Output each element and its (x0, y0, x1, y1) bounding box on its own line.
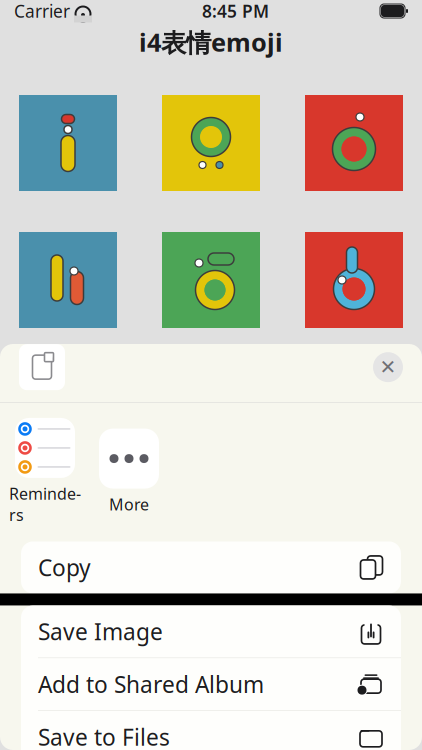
staticText: More (109, 494, 149, 515)
staticText: Add to Shared Album (38, 669, 264, 699)
staticText: 8:45 PM (202, 0, 269, 22)
button[interactable]: Emoji 4 (19, 232, 117, 328)
staticText: Save to Files (38, 722, 170, 750)
button[interactable]: More (92, 429, 166, 515)
button[interactable]: Emoji 6 (305, 232, 403, 328)
staticText: Carrier (14, 0, 70, 22)
staticText: Copy (38, 552, 91, 582)
button[interactable]: Emoji 2 (162, 95, 260, 191)
button[interactable]: Save to Files (21, 711, 401, 750)
button[interactable]: Save Image (21, 605, 401, 657)
button[interactable]: Emoji 5 (162, 232, 260, 328)
button[interactable]: Reminders (8, 418, 82, 525)
staticText: Reminders (9, 483, 81, 525)
button[interactable]: Emoji 3 (305, 95, 403, 191)
button[interactable]: Emoji 1 (19, 95, 117, 191)
button[interactable]: Copy (21, 541, 401, 593)
button[interactable]: Add to Shared Album (21, 658, 401, 710)
staticText: i4表情emoji (139, 25, 283, 59)
button[interactable]: Close (373, 352, 403, 382)
staticText: Save Image (38, 616, 163, 646)
staticText: ✕ (379, 356, 396, 378)
